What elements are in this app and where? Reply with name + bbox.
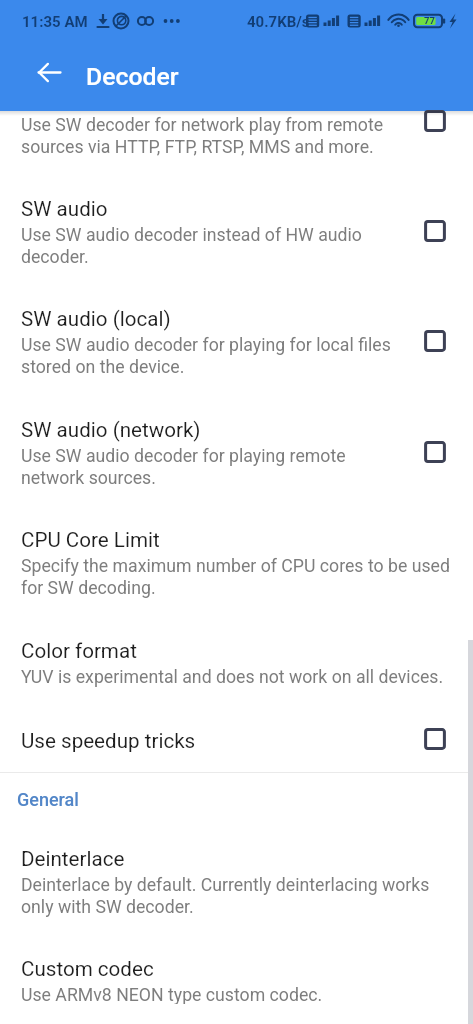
button[interactable]: Toggle checkbox: [411, 317, 459, 365]
button[interactable]: Toggle checkbox: [411, 428, 459, 476]
staticText: Use SW audio decoder instead of HW audio…: [21, 225, 396, 268]
staticText: SW audio: [21, 197, 108, 221]
staticText: Use SW decoder for network play from rem…: [21, 115, 396, 158]
staticText: CPU Core Limit: [21, 528, 160, 552]
button[interactable]: CPU Core Limit: [0, 509, 473, 619]
staticText: General: [17, 789, 79, 810]
staticText: Deinterlace by default. Currently deinte…: [21, 875, 453, 918]
staticText: 11:35 AM: [22, 13, 88, 31]
staticText: Use SW audio decoder for playing for loc…: [21, 335, 396, 378]
button[interactable]: Use speedup tricks: [0, 709, 473, 772]
staticText: 40.7KB/s: [247, 13, 310, 31]
button[interactable]: Toggle checkbox: [411, 715, 459, 763]
button[interactable]: Toggle checkbox: [411, 97, 459, 145]
staticText: 77: [424, 15, 435, 26]
staticText: Custom codec: [21, 957, 154, 981]
button[interactable]: SW audio: [0, 178, 473, 288]
staticText: SW audio (network): [21, 418, 201, 442]
button[interactable]: SW audio (network): [0, 398, 473, 509]
button[interactable]: Toggle checkbox: [411, 207, 459, 255]
staticText: Use speedup tricks: [21, 729, 196, 753]
button[interactable]: Back: [25, 48, 73, 96]
staticText: Color format: [21, 639, 137, 663]
staticText: Decoder: [86, 62, 179, 91]
staticText: Deinterlace: [21, 847, 125, 871]
staticText: SW audio (local): [21, 307, 171, 331]
staticText: Specify the maximum number of CPU cores …: [21, 556, 453, 599]
button[interactable]: Custom codec: [0, 938, 473, 1024]
staticText: Use ARMv8 NEON type custom codec.: [21, 985, 323, 1004]
button[interactable]: SW audio (local): [0, 288, 473, 398]
staticText: YUV is experimental and does not work on…: [21, 667, 444, 688]
button[interactable]: Color format: [0, 619, 473, 709]
button[interactable]: Deinterlace: [0, 828, 473, 938]
button[interactable]: Use SW decoder for network play from rem…: [0, 111, 473, 178]
staticText: Use SW audio decoder for playing remote …: [21, 446, 396, 489]
